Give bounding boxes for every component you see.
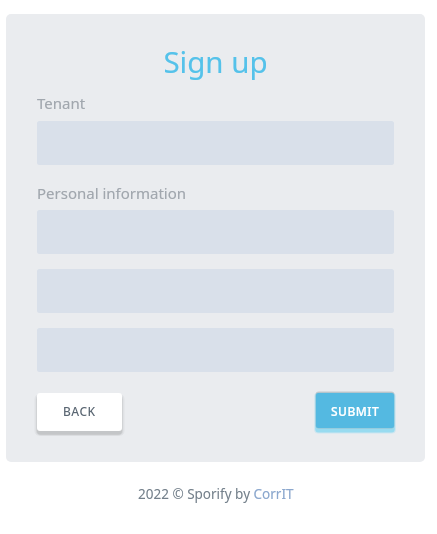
- staticText: Personal information: [37, 183, 187, 203]
- staticText: Tenant: [37, 93, 86, 113]
- staticText: SUBMIT: [331, 403, 380, 419]
- staticText: Sign up: [163, 41, 268, 81]
- button[interactable]: BACK: [37, 393, 122, 431]
- staticText: BACK: [63, 403, 96, 419]
- staticText: 2022 © Sporify by CorrIT: [138, 485, 294, 503]
- button[interactable]: SUBMIT: [316, 393, 394, 428]
